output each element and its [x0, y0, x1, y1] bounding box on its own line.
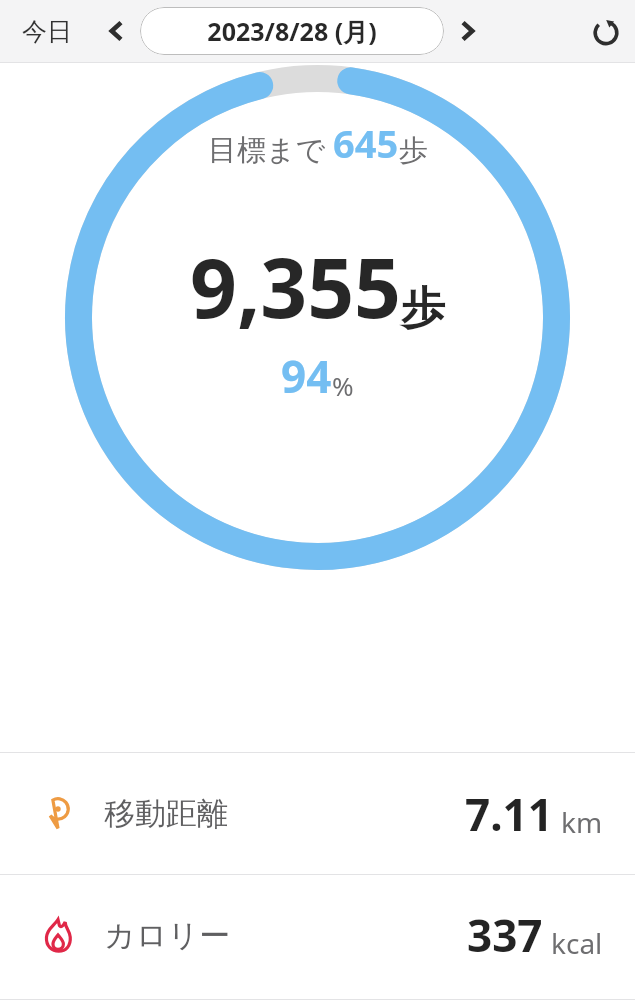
staticText: 移動距離 — [104, 794, 228, 833]
button[interactable]: 移動距離 — [0, 753, 635, 874]
button[interactable]: Previous day — [94, 8, 140, 54]
button[interactable]: 2023/8/28 (月) — [140, 7, 444, 55]
staticText: 9,355 — [190, 230, 401, 342]
staticText: 645 — [333, 117, 399, 169]
staticText: 目標まで — [208, 132, 326, 169]
staticText: 歩 — [399, 132, 428, 169]
staticText: 7.11 — [465, 784, 553, 844]
button[interactable]: Refresh — [577, 2, 635, 60]
staticText: 94 — [281, 346, 332, 406]
staticText: 歩 — [401, 281, 445, 336]
staticText: km — [561, 803, 603, 841]
staticText: 2023/8/28 (月) — [207, 14, 377, 48]
staticText: kcal — [551, 924, 603, 962]
button[interactable]: カロリー — [0, 875, 635, 995]
staticText: 今日 — [22, 16, 72, 47]
staticText: 337 — [467, 905, 543, 965]
button[interactable]: Next day — [444, 8, 490, 54]
staticText: % — [332, 368, 354, 403]
staticText: カロリー — [104, 916, 231, 955]
button[interactable]: 今日 — [0, 8, 94, 55]
